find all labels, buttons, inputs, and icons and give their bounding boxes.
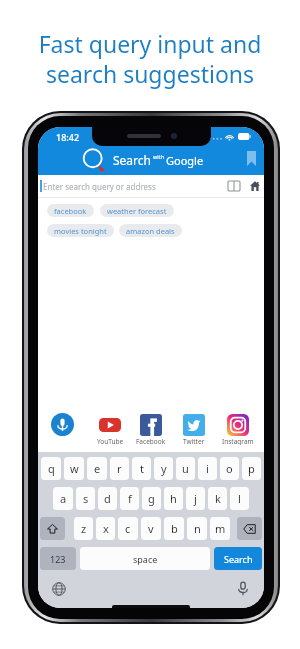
- staticText: a: [60, 491, 67, 506]
- button[interactable]: Key: [40, 517, 65, 540]
- staticText: t: [140, 461, 144, 476]
- staticText: Instagram: [222, 437, 254, 445]
- staticText: movies tonight: [54, 226, 107, 236]
- staticText: s: [83, 491, 89, 506]
- button[interactable]: a: [53, 487, 73, 510]
- button[interactable]: d: [98, 487, 117, 510]
- staticText: j: [194, 491, 197, 506]
- staticText: 18:42: [56, 131, 80, 143]
- staticText: facebook: [54, 206, 87, 216]
- staticText: space: [133, 553, 158, 565]
- button[interactable]: Twitter: [166, 413, 222, 445]
- staticText: w: [70, 461, 79, 476]
- staticText: Google: [166, 153, 204, 168]
- staticText: Enter search query or address: [43, 181, 156, 192]
- button[interactable]: amazon deals: [119, 224, 182, 237]
- staticText: u: [182, 461, 189, 476]
- button[interactable]: h: [164, 487, 183, 510]
- button[interactable]: Key: [237, 517, 262, 540]
- staticText: h: [170, 491, 177, 506]
- staticText: g: [148, 491, 155, 506]
- button[interactable]: g: [142, 487, 161, 510]
- staticText: weather forecast: [107, 206, 167, 216]
- button[interactable]: space: [80, 547, 210, 570]
- button[interactable]: z: [74, 517, 93, 540]
- staticText: o: [226, 461, 233, 476]
- button[interactable]: m: [210, 517, 230, 540]
- button[interactable]: y: [154, 457, 173, 480]
- staticText: c: [125, 521, 131, 536]
- button[interactable]: movies tonight: [47, 224, 114, 237]
- staticText: k: [215, 491, 221, 506]
- staticText: YouTube: [97, 437, 124, 445]
- staticText: f: [128, 491, 132, 506]
- button[interactable]: Change keyboard: [52, 582, 66, 596]
- button[interactable]: o: [220, 457, 239, 480]
- staticText: d: [104, 491, 111, 506]
- button[interactable]: c: [118, 517, 138, 540]
- staticText: 123: [50, 553, 66, 565]
- button[interactable]: s: [76, 487, 95, 510]
- staticText: y: [161, 461, 167, 476]
- button[interactable]: Instagram: [210, 413, 264, 445]
- button[interactable]: Tabs: [228, 181, 240, 191]
- button[interactable]: Search: [214, 547, 262, 570]
- button[interactable]: facebook: [47, 204, 94, 217]
- staticText: Facebook: [136, 437, 166, 445]
- staticText: Search: [224, 553, 253, 565]
- button[interactable]: v: [141, 517, 161, 540]
- staticText: e: [94, 461, 101, 476]
- button[interactable]: Bookmarks: [247, 151, 256, 166]
- button[interactable]: t: [132, 457, 151, 480]
- button[interactable]: Voice search: [38, 413, 90, 436]
- staticText: l: [238, 491, 241, 506]
- button[interactable]: 123: [40, 547, 76, 570]
- staticText: z: [81, 521, 87, 536]
- button[interactable]: b: [164, 517, 184, 540]
- button[interactable]: weather forecast: [100, 204, 174, 217]
- button[interactable]: f: [120, 487, 139, 510]
- staticText: with: [153, 153, 165, 160]
- button[interactable]: r: [110, 457, 129, 480]
- button[interactable]: e: [87, 457, 107, 480]
- staticText: Fast query input and search suggestions: [0, 28, 300, 89]
- staticText: n: [194, 521, 201, 536]
- staticText: Search: [113, 152, 151, 168]
- staticText: q: [48, 461, 55, 476]
- button[interactable]: n: [187, 517, 207, 540]
- button[interactable]: k: [208, 487, 227, 510]
- staticText: v: [148, 521, 154, 536]
- button[interactable]: l: [230, 487, 249, 510]
- button[interactable]: p: [242, 457, 261, 480]
- staticText: x: [103, 521, 109, 536]
- staticText: i: [206, 461, 209, 476]
- staticText: amazon deals: [126, 226, 175, 236]
- button[interactable]: w: [64, 457, 84, 480]
- staticText: r: [117, 461, 122, 476]
- button[interactable]: x: [96, 517, 115, 540]
- staticText: b: [171, 521, 178, 536]
- button[interactable]: i: [198, 457, 217, 480]
- staticText: m: [215, 521, 226, 536]
- button[interactable]: Dictate: [238, 581, 248, 596]
- button[interactable]: Facebook: [123, 413, 179, 445]
- button[interactable]: u: [176, 457, 195, 480]
- button[interactable]: YouTube: [82, 413, 138, 445]
- staticText: p: [248, 461, 255, 476]
- staticText: Twitter: [183, 437, 205, 445]
- button[interactable]: q: [41, 457, 61, 480]
- button[interactable]: Home: [250, 181, 260, 191]
- button[interactable]: j: [186, 487, 205, 510]
